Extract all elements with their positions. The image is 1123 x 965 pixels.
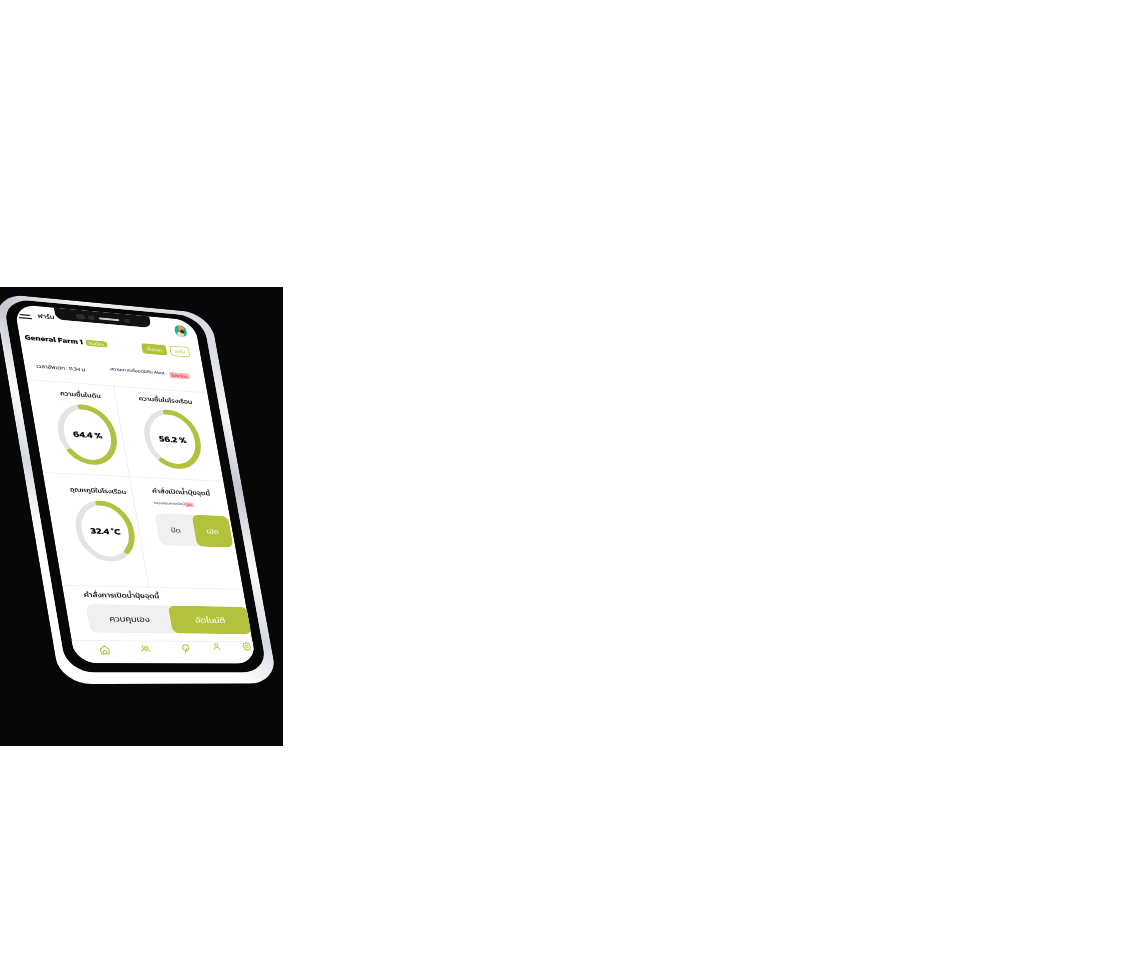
staticText: 64.4 % <box>72 427 103 442</box>
staticText: ไม่พร้อม <box>171 372 188 379</box>
button[interactable]: อัตโนมัติ <box>168 605 251 634</box>
staticText: ตรวจสอบการเปิดน้ำ <box>153 500 187 507</box>
staticText: ตั้งเวลา <box>146 345 163 353</box>
staticText: อัตโนมัติ <box>194 614 226 626</box>
staticText: แก้ไข <box>174 348 186 355</box>
button[interactable]: Profile <box>174 325 188 337</box>
button[interactable]: Settings <box>235 636 255 656</box>
button[interactable]: Home <box>92 639 117 660</box>
button[interactable]: Community <box>134 639 157 660</box>
button[interactable]: Menu <box>17 311 33 322</box>
staticText: ปิด <box>170 525 181 535</box>
staticText: เปิด <box>206 526 220 536</box>
staticText: General Farm 1 <box>24 331 84 347</box>
staticText: 32.4 °C <box>89 524 121 538</box>
button[interactable]: โรงเรือน <box>85 340 108 348</box>
staticText: คำสั่งการเปิดน้ำปุ๋ยจุดนี้ <box>83 589 160 601</box>
button[interactable]: Account <box>205 637 228 658</box>
staticText: ฟาร์ม <box>37 311 55 321</box>
button[interactable]: ควบคุมเอง <box>85 604 173 633</box>
staticText: ปิด <box>186 502 192 507</box>
staticText: อุณหภูมิในโรงเรือน <box>69 485 127 496</box>
staticText: ความชื้นในโรงเรือน <box>138 394 193 406</box>
button[interactable]: ตั้งเวลา <box>141 343 168 356</box>
staticText: โรงเรือน <box>88 340 105 347</box>
staticText: ควบคุมเอง <box>108 613 151 625</box>
button[interactable]: ปิด <box>154 513 197 546</box>
staticText: สถานะการเชื่อมต่อกับ Abot : <box>109 365 167 376</box>
staticText: คำสั่งเปิดน้ำปุ๋ยจุดนี้ <box>151 486 211 498</box>
button[interactable]: Plants <box>174 638 197 659</box>
button[interactable]: เปิด <box>191 515 234 548</box>
button[interactable]: แก้ไข <box>169 345 190 357</box>
staticText: 56.2 % <box>158 432 188 446</box>
staticText: ความชื้นในดิน <box>59 389 102 400</box>
staticText: เวลาอัพเดท : 11:34 น. <box>36 362 87 373</box>
